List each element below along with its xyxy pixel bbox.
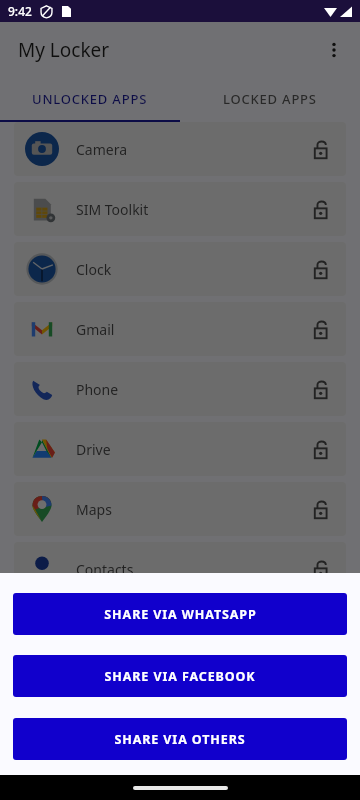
- button[interactable]: SHARE VIA FACEBOOK: [13, 655, 347, 697]
- staticText: SHARE VIA WHATSAPP: [104, 606, 257, 623]
- staticText: Maps: [76, 500, 306, 519]
- staticText: SIM Toolkit: [76, 200, 306, 219]
- button[interactable]: UNLOCKED APPS: [0, 78, 180, 120]
- staticText: Drive: [76, 440, 306, 459]
- staticText: Gmail: [76, 320, 306, 339]
- staticText: LOCKED APPS: [223, 90, 317, 108]
- staticText: SHARE VIA FACEBOOK: [104, 668, 256, 685]
- button[interactable]: SHARE VIA WHATSAPP: [13, 593, 347, 635]
- button[interactable]: Clock: [14, 242, 346, 296]
- staticText: Contacts: [76, 560, 306, 579]
- button[interactable]: Lock SIM Toolkit: [306, 195, 334, 223]
- button[interactable]: Lock Clock: [306, 255, 334, 283]
- button[interactable]: Lock Drive: [306, 435, 334, 463]
- staticText: SHARE VIA OTHERS: [114, 731, 246, 748]
- staticText: Clock: [76, 260, 306, 279]
- button[interactable]: Drive: [14, 422, 346, 476]
- button[interactable]: SIM Toolkit: [14, 182, 346, 236]
- staticText: Camera: [76, 140, 306, 159]
- button[interactable]: Lock Maps: [306, 495, 334, 523]
- button[interactable]: Lock Contacts: [306, 555, 334, 583]
- button[interactable]: Lock Camera: [306, 135, 334, 163]
- button[interactable]: Lock Phone: [306, 375, 334, 403]
- staticText: UNLOCKED APPS: [32, 90, 148, 108]
- staticText: 9:42: [8, 3, 32, 19]
- button[interactable]: Gmail: [14, 302, 346, 356]
- button[interactable]: Maps: [14, 482, 346, 536]
- button[interactable]: More options: [314, 30, 354, 70]
- button[interactable]: Lock Gmail: [306, 315, 334, 343]
- button[interactable]: LOCKED APPS: [180, 78, 360, 120]
- button[interactable]: Phone: [14, 362, 346, 416]
- staticText: Phone: [76, 380, 306, 399]
- button[interactable]: Contacts: [14, 542, 346, 596]
- staticText: My Locker: [18, 37, 110, 63]
- button[interactable]: SHARE VIA OTHERS: [13, 718, 347, 760]
- button[interactable]: Camera: [14, 122, 346, 176]
